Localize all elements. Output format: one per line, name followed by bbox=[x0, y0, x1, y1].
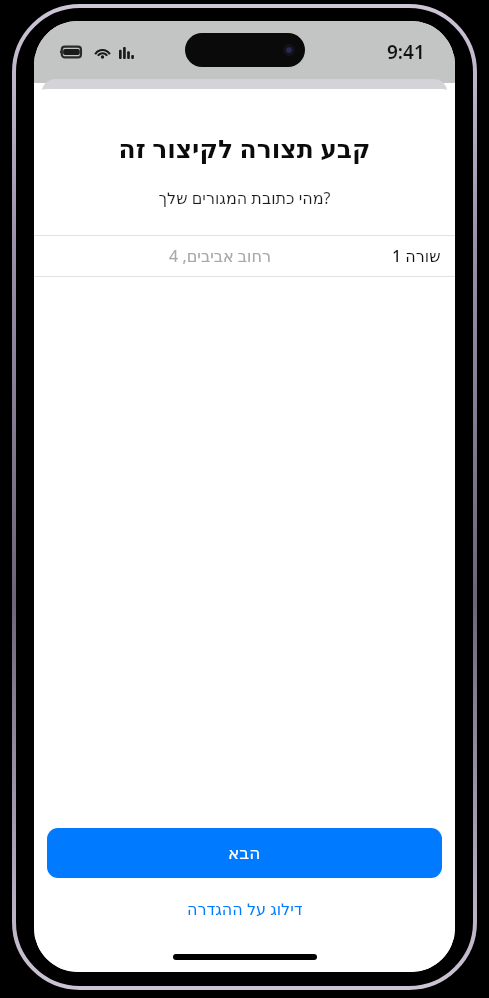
staticText: מהי כתובת המגורים שלך? bbox=[54, 187, 435, 209]
staticText: שורה 1 bbox=[392, 245, 441, 267]
button[interactable]: הבא bbox=[47, 828, 442, 878]
staticText: 9:41 bbox=[387, 39, 425, 65]
button[interactable]: דילוג על ההגדרה bbox=[34, 892, 455, 926]
staticText: דילוג על ההגדרה bbox=[187, 898, 303, 920]
staticText: קבע תצורה לקיצור זה bbox=[54, 131, 435, 165]
staticText: רחוב אביבים, 4 bbox=[48, 245, 392, 267]
button[interactable]: רחוב אביבים, 4 bbox=[34, 236, 455, 276]
staticText: הבא bbox=[228, 843, 261, 863]
